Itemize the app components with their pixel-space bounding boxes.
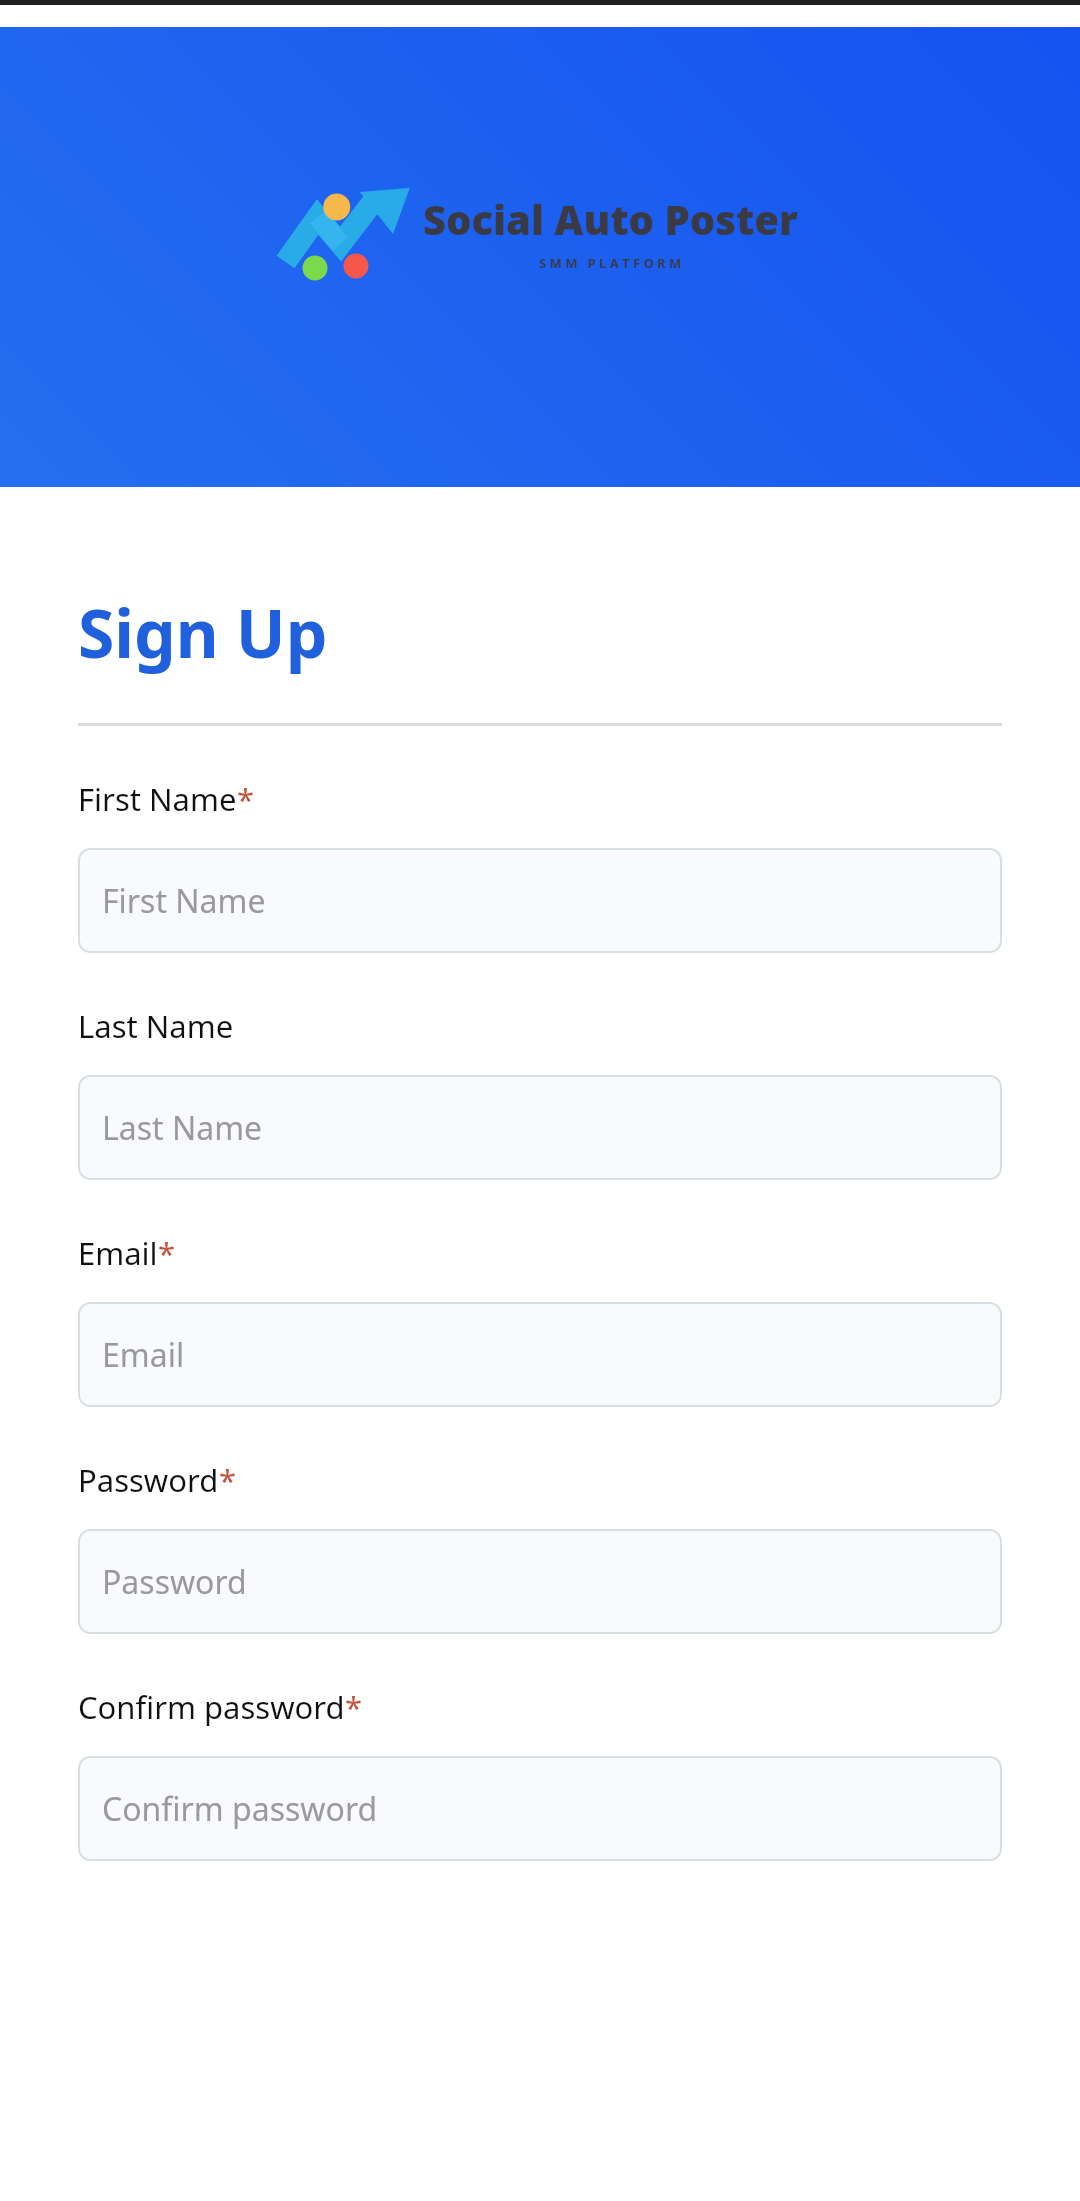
- staticText: Sign Up: [78, 587, 328, 677]
- staticText: *: [219, 1459, 237, 1501]
- staticText: First Name: [78, 778, 237, 820]
- button[interactable]: Last Name: [78, 1075, 1002, 1180]
- staticText: Password: [102, 1560, 247, 1604]
- staticText: Confirm password: [78, 1686, 345, 1728]
- staticText: First Name: [102, 879, 266, 923]
- staticText: Email: [102, 1333, 185, 1377]
- staticText: Password: [78, 1459, 219, 1501]
- staticText: Last Name: [78, 1005, 234, 1047]
- staticText: Email: [78, 1232, 158, 1274]
- button[interactable]: Email: [78, 1302, 1002, 1407]
- staticText: Social Auto Poster: [423, 192, 798, 246]
- button[interactable]: Password: [78, 1529, 1002, 1634]
- button[interactable]: First Name: [78, 848, 1002, 953]
- staticText: Confirm password: [102, 1787, 378, 1831]
- staticText: S M M P L A T F O R M: [539, 254, 682, 272]
- staticText: *: [345, 1686, 363, 1728]
- staticText: Last Name: [102, 1106, 263, 1150]
- other: Social Auto Poster: [283, 182, 798, 282]
- staticText: *: [158, 1232, 176, 1274]
- button[interactable]: Confirm password: [78, 1756, 1002, 1861]
- staticText: *: [237, 778, 255, 820]
